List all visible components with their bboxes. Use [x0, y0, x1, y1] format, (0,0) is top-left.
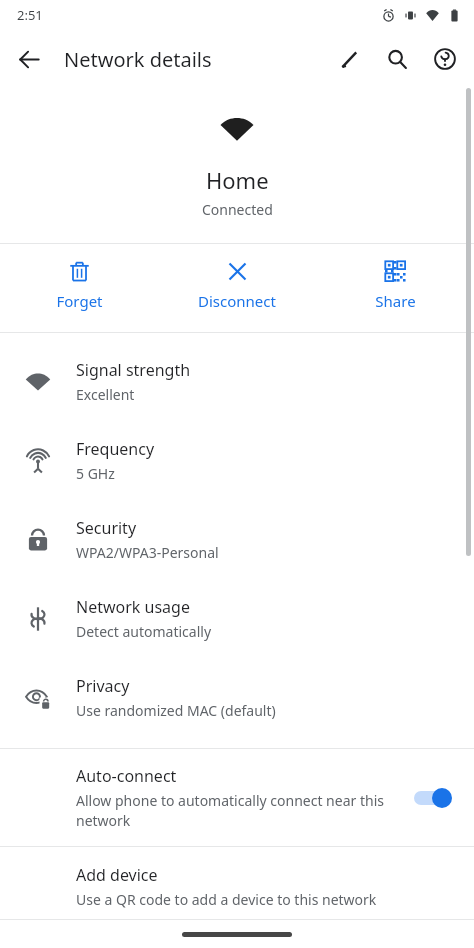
button[interactable]: Add device [0, 847, 474, 919]
staticText: Use randomized MAC (default) [76, 701, 276, 720]
button[interactable]: Signal strength [0, 342, 474, 421]
button[interactable]: Network usage [0, 579, 474, 658]
button[interactable]: Share [316, 244, 474, 332]
staticText: Excellent [76, 385, 135, 404]
button[interactable]: Edit [325, 35, 373, 83]
staticText: Frequency [76, 438, 155, 460]
button[interactable]: Auto-connect toggle [412, 783, 458, 813]
staticText: Add device [76, 864, 158, 886]
staticText: Signal strength [76, 359, 191, 381]
staticText: Network usage [76, 596, 190, 618]
staticText: WPA2/WPA3-Personal [76, 543, 219, 562]
staticText: Home [206, 165, 269, 195]
staticText: Share [375, 291, 416, 311]
staticText: Auto-connect [76, 765, 177, 787]
button[interactable]: Forget [0, 244, 158, 332]
button[interactable]: Auto-connect [0, 749, 474, 846]
staticText: Forget [56, 291, 103, 311]
staticText: Privacy [76, 675, 130, 697]
staticText: Connected [202, 200, 273, 219]
button[interactable]: Disconnect [158, 244, 316, 332]
staticText: 2:51 [17, 6, 43, 24]
button[interactable]: Privacy [0, 658, 474, 737]
staticText: Allow phone to automatically connect nea… [76, 791, 402, 830]
staticText: Use a QR code to add a device to this ne… [76, 890, 377, 909]
button[interactable]: Frequency [0, 421, 474, 500]
button[interactable]: Help [421, 35, 469, 83]
button[interactable]: Security [0, 500, 474, 579]
staticText: Network details [64, 46, 212, 73]
staticText: Security [76, 517, 137, 539]
staticText: Detect automatically [76, 622, 212, 641]
button[interactable]: Search [373, 35, 421, 83]
staticText: Disconnect [198, 291, 276, 311]
staticText: 5 GHz [76, 464, 115, 483]
button[interactable]: Back [5, 35, 53, 83]
